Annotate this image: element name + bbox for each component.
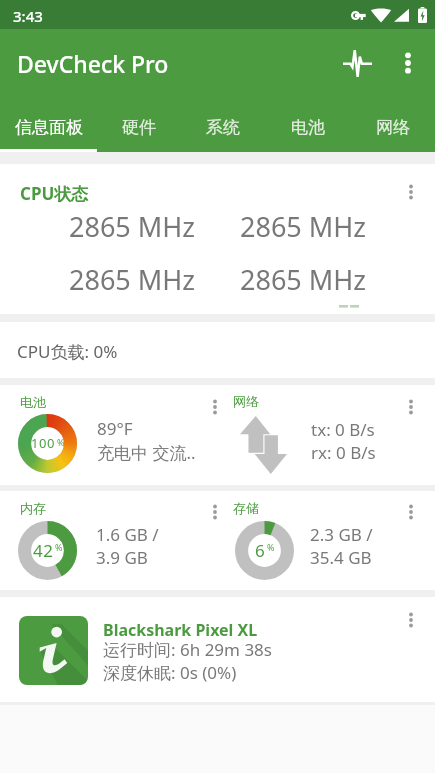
staticText: 3.9 GB (96, 546, 148, 569)
button[interactable]: 电池 (265, 103, 350, 152)
staticText: 存储 (233, 500, 259, 516)
button[interactable]: Monitor (333, 38, 381, 86)
staticText: 充电中 交流.. (97, 441, 196, 464)
staticText: 电池 (20, 394, 46, 410)
staticText: 运行时间: 6h 29m 38s (103, 638, 272, 661)
button[interactable]: 硬件 (97, 103, 181, 152)
button[interactable]: Memory options (198, 495, 232, 529)
staticText: 内存 (20, 500, 46, 516)
staticText: 42 (33, 539, 54, 562)
staticText: 100 (31, 434, 56, 452)
button[interactable]: 网络 (350, 103, 435, 152)
staticText: rx: 0 B/s (311, 441, 376, 464)
staticText: 1.6 GB / (96, 523, 159, 546)
staticText: % (57, 436, 65, 448)
button[interactable]: More options (384, 39, 432, 87)
staticText: 2865 MHz (69, 261, 195, 298)
staticText: 2865 MHz (240, 261, 366, 298)
staticText: 3:43 (13, 6, 43, 26)
button[interactable]: Device options (394, 603, 428, 637)
staticText: 2865 MHz (69, 208, 195, 245)
staticText: 89°F (97, 417, 133, 440)
staticText: 2865 MHz (240, 208, 366, 245)
button[interactable]: 信息面板 (0, 103, 97, 152)
button[interactable]: Blackshark Pixel XL (0, 597, 435, 702)
staticText: DevCheck Pro (17, 48, 169, 79)
staticText: CPU状态 (20, 182, 89, 205)
button[interactable]: Battery options (198, 390, 232, 424)
staticText: 电池 (291, 117, 325, 138)
staticText: 信息面板 (15, 117, 83, 138)
staticText: 6 (255, 539, 266, 562)
staticText: tx: 0 B/s (311, 418, 375, 441)
staticText: 系统 (206, 117, 240, 138)
staticText: CPU负载: 0% (17, 340, 118, 363)
staticText: 硬件 (122, 117, 156, 138)
staticText: 35.4 GB (310, 546, 372, 569)
staticText: % (55, 541, 63, 553)
button[interactable]: Storage options (394, 495, 428, 529)
button[interactable]: CPU options (394, 175, 428, 209)
staticText: Blackshark Pixel XL (103, 619, 258, 641)
staticText: 网络 (376, 117, 410, 138)
staticText: 网络 (233, 393, 259, 409)
staticText: 2.3 GB / (310, 523, 373, 546)
staticText: % (267, 541, 275, 553)
button[interactable]: 系统 (181, 103, 265, 152)
staticText: 深度休眠: 0s (0%) (103, 661, 237, 684)
button[interactable]: Network options (394, 390, 428, 424)
